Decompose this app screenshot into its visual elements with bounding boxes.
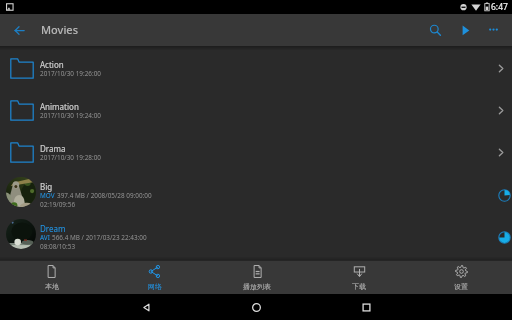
staticText: 本地 <box>45 282 59 291</box>
staticText: 08:08/10:53 <box>40 242 76 251</box>
button[interactable]: Dream <box>0 215 512 257</box>
button[interactable]: Action <box>0 47 512 89</box>
staticText: MOV <box>40 191 55 200</box>
staticText: Drama <box>40 143 66 154</box>
staticText: 2017/10/30 19:24:00 <box>40 111 102 120</box>
button[interactable]: 播放列表 <box>206 261 308 294</box>
staticText: 网络 <box>148 282 162 291</box>
staticText: 2017/10/30 19:26:00 <box>40 69 102 78</box>
button[interactable]: Recents <box>311 294 421 320</box>
staticText: Animation <box>40 101 79 112</box>
button[interactable]: 网络 <box>103 261 206 294</box>
button[interactable]: Back <box>0 14 38 47</box>
staticText: 下载 <box>352 282 366 291</box>
button[interactable]: 设置 <box>410 261 512 294</box>
button[interactable]: Home <box>201 294 311 320</box>
button[interactable]: Play <box>459 24 472 37</box>
button[interactable]: More options <box>487 24 500 37</box>
staticText: 397.4 MB / 2008/05/28 09:00:00 <box>57 191 152 200</box>
staticText: 2017/10/30 19:28:00 <box>40 153 102 162</box>
button[interactable]: Drama <box>0 131 512 173</box>
staticText: 播放列表 <box>243 282 271 291</box>
button[interactable]: 本地 <box>0 261 103 294</box>
staticText: AVI <box>40 233 50 242</box>
staticText: Big <box>40 181 53 192</box>
button[interactable]: 下载 <box>308 261 410 294</box>
staticText: 566.4 MB / 2017/03/23 22:43:00 <box>52 233 147 242</box>
staticText: 6:47 <box>491 1 508 13</box>
button[interactable]: Big <box>0 173 512 215</box>
staticText: Action <box>40 59 64 70</box>
button[interactable]: Back <box>91 294 201 320</box>
staticText: Movies <box>41 22 79 37</box>
button[interactable]: Animation <box>0 89 512 131</box>
staticText: 设置 <box>454 282 468 291</box>
button[interactable]: Search <box>429 24 442 37</box>
staticText: Dream <box>40 223 66 234</box>
staticText: 02:19/09:56 <box>40 200 76 209</box>
